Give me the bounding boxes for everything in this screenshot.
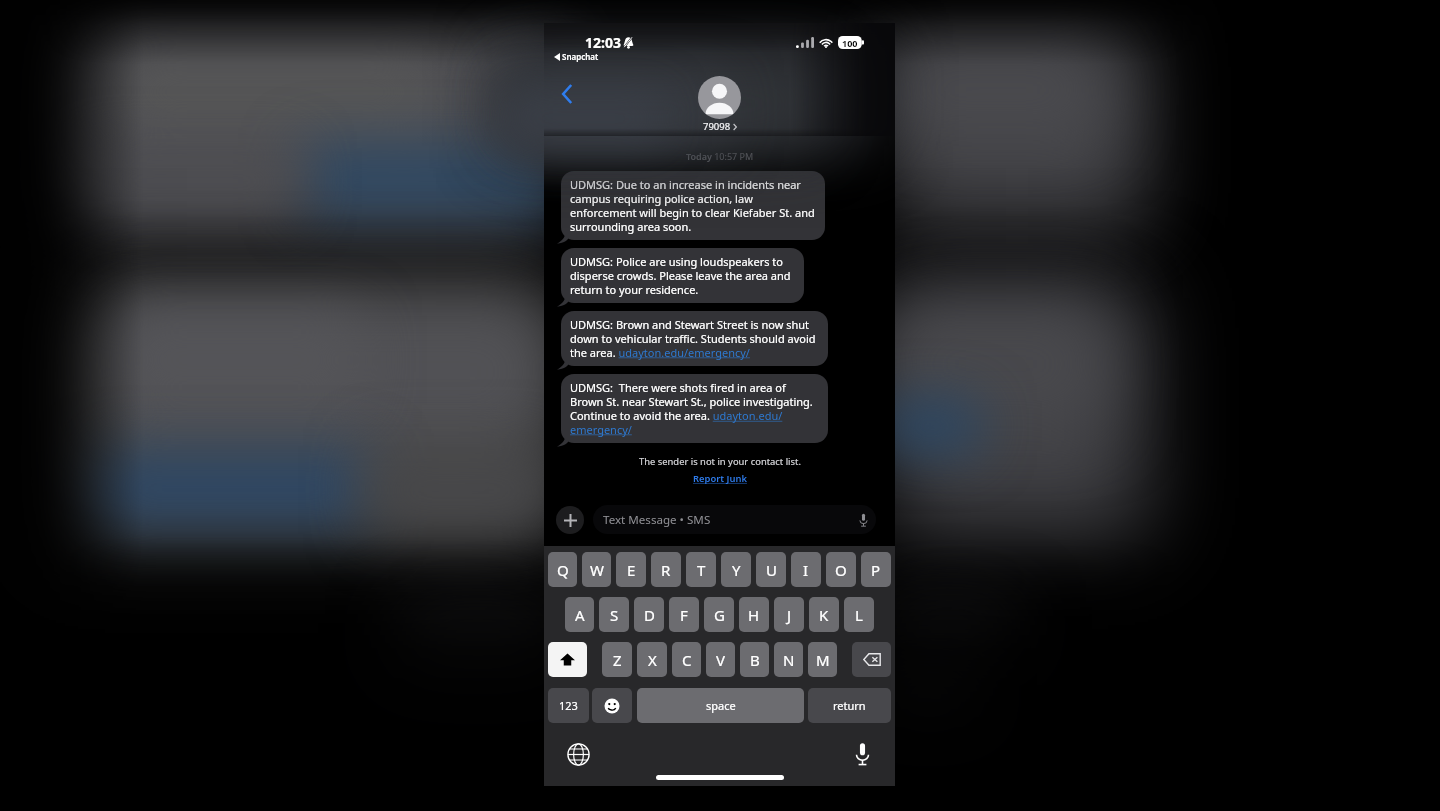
staticText: L [855,605,863,625]
button[interactable]: F [669,597,699,632]
button[interactable]: M [808,642,837,677]
button[interactable]: I [791,552,821,587]
staticText: A [575,605,585,625]
staticText: W [590,560,604,580]
button[interactable]: 123 [548,688,589,723]
button[interactable]: B [740,642,769,677]
button[interactable]: L [844,597,874,632]
staticText: H [748,605,760,625]
button[interactable]: Q [548,552,577,587]
button[interactable]: G [704,597,734,632]
button[interactable]: UDMSG: Police are using loudspeakers to … [561,248,804,303]
staticText: Today 10:57 PM [686,150,754,162]
button[interactable]: V [706,642,735,677]
staticText: Text Message • SMS [603,512,711,528]
button[interactable]: S [599,597,629,632]
staticText: P [871,560,881,580]
button[interactable]: Backspace [852,642,891,677]
staticText: Report Junk [693,472,747,485]
staticText: J [787,605,792,625]
staticText: B [750,650,760,670]
button[interactable]: H [739,597,769,632]
staticText: V [716,650,726,670]
staticText: E [627,560,636,580]
button[interactable]: Z [602,642,632,677]
button[interactable]: Y [721,552,751,587]
button[interactable]: UDMSG: Due to an increase in incidents n… [561,171,825,240]
staticText: 123 [559,698,578,713]
staticText: G [714,605,725,625]
button[interactable]: Shift [548,642,587,677]
button[interactable]: P [861,552,891,587]
staticText: R [661,560,671,580]
staticText: I [803,560,809,580]
button[interactable]: T [686,552,716,587]
staticText: 79098 [703,120,731,133]
button[interactable]: N [774,642,803,677]
button[interactable]: Emoji [592,688,632,723]
staticText: Q [557,560,569,580]
staticText: Z [613,650,622,670]
button[interactable]: J [774,597,804,632]
button[interactable]: Report Junk [691,471,749,486]
staticText: 12:03 [585,33,621,52]
staticText: D [644,605,655,625]
button[interactable]: Add attachment [556,506,584,534]
staticText: UDMSG: Brown and Stewart Street is now s… [570,317,819,360]
staticText: Y [732,560,741,580]
button[interactable]: UDMSG: There were shots fired in area of… [561,374,828,443]
button[interactable]: U [756,552,786,587]
staticText: U [766,560,777,580]
button[interactable]: X [637,642,667,677]
staticText: C [682,650,692,670]
staticText: UDMSG: There were shots fired in area of… [570,380,819,437]
staticText: Snapchat [562,51,599,62]
button[interactable]: Back [552,79,582,109]
staticText: S [610,605,619,625]
staticText: UDMSG: Police are using loudspeakers to … [570,254,795,297]
button[interactable]: UDMSG: Brown and Stewart Street is now s… [561,311,828,366]
staticText: The sender is not in your contact list. [639,455,801,468]
button[interactable]: return [808,688,891,723]
button[interactable]: O [826,552,856,587]
staticText: T [697,560,706,580]
staticText: F [680,605,688,625]
button[interactable]: space [637,688,804,723]
button[interactable]: Switch keyboard [564,740,592,768]
staticText: X [648,650,657,670]
button[interactable]: D [634,597,664,632]
staticText: K [819,605,829,625]
button[interactable]: R [651,552,681,587]
button[interactable]: C [672,642,701,677]
staticText: space [706,698,736,713]
staticText: N [783,650,795,670]
staticText: return [833,698,866,713]
button[interactable]: Text Message • SMS [593,505,876,534]
staticText: O [835,560,847,580]
button[interactable]: E [616,552,646,587]
button[interactable]: A [565,597,594,632]
staticText: 100 [842,37,858,49]
staticText: UDMSG: Due to an increase in incidents n… [570,177,816,234]
staticText: M [816,650,830,670]
button[interactable]: W [582,552,611,587]
button[interactable]: 79098 [698,76,741,133]
button[interactable]: Dictation [848,740,876,768]
button[interactable]: K [809,597,839,632]
